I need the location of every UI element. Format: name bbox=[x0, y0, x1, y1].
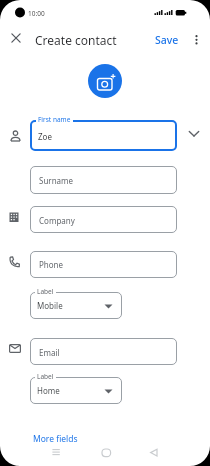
button[interactable] bbox=[30, 338, 177, 365]
staticText: Mobile bbox=[37, 300, 63, 311]
staticText: Home bbox=[37, 385, 60, 396]
button[interactable] bbox=[46, 443, 66, 461]
button[interactable] bbox=[30, 166, 177, 194]
button[interactable]: Save bbox=[151, 31, 182, 48]
button[interactable]: More fields bbox=[30, 430, 85, 444]
button[interactable] bbox=[144, 443, 164, 461]
staticText: More fields bbox=[33, 433, 78, 445]
staticText: 10:00 bbox=[28, 9, 45, 18]
staticText: Phone bbox=[39, 259, 64, 270]
button[interactable] bbox=[30, 377, 122, 404]
staticText: Email bbox=[39, 347, 60, 358]
button[interactable] bbox=[30, 206, 177, 233]
button[interactable] bbox=[190, 32, 203, 47]
staticText: Zoe bbox=[38, 131, 52, 142]
button[interactable] bbox=[88, 64, 122, 98]
button[interactable] bbox=[30, 120, 177, 151]
button[interactable] bbox=[96, 443, 116, 461]
staticText: First name bbox=[38, 115, 71, 124]
button[interactable] bbox=[185, 125, 203, 143]
staticText: Create contact bbox=[35, 32, 117, 48]
button[interactable] bbox=[9, 31, 23, 45]
staticText: Label bbox=[37, 372, 54, 381]
staticText: Label bbox=[37, 287, 54, 296]
staticText: Save bbox=[155, 33, 179, 47]
button[interactable] bbox=[30, 292, 122, 319]
staticText: Company bbox=[39, 215, 75, 226]
staticText: Surname bbox=[39, 175, 74, 186]
button[interactable] bbox=[30, 251, 177, 278]
